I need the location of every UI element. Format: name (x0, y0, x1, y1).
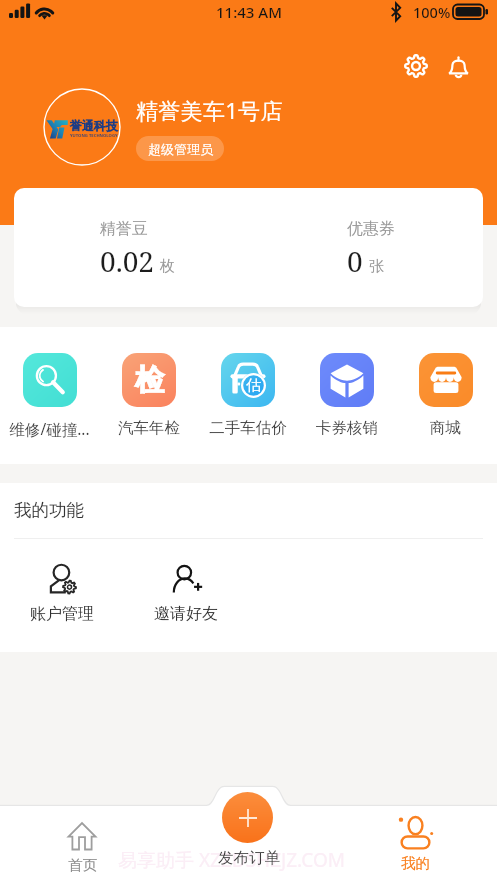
staticText: 首页 (68, 856, 97, 874)
staticText: 商城 (430, 418, 461, 438)
button[interactable]: 估 (198, 353, 297, 438)
button[interactable]: 发布订单 (222, 792, 273, 843)
staticText: 卡券核销 (316, 418, 378, 438)
staticText: 优惠券 (347, 219, 395, 239)
button[interactable]: Notifications (440, 48, 476, 84)
staticText: 易享助手 XZZDSHZJZ.COM (118, 847, 345, 873)
staticText: 估 (246, 376, 261, 395)
button[interactable]: 超级管理员 (136, 136, 224, 161)
staticText: 检 (135, 362, 164, 399)
staticText: 张 (369, 257, 384, 276)
button[interactable]: 卡券核销 (297, 353, 396, 438)
staticText: 11:43 AM (216, 2, 282, 22)
staticText: 枚 (160, 257, 175, 276)
staticText: 维修/碰撞... (9, 418, 90, 439)
staticText: YUTONG TECHNOLOGY (70, 133, 118, 139)
staticText: 精誉美车1号店 (136, 95, 283, 125)
staticText: 0 (347, 242, 363, 280)
button[interactable]: 首页 (47, 821, 117, 874)
staticText: 我的 (401, 854, 430, 872)
button[interactable]: 检 (99, 353, 198, 438)
staticText: 我的功能 (14, 499, 84, 521)
staticText: 超级管理员 (148, 141, 213, 157)
button[interactable]: 邀请好友 (124, 565, 248, 624)
staticText: 发布订单 (218, 848, 280, 868)
staticText: 精誉豆 (100, 219, 148, 239)
button[interactable]: 维修/碰撞... (0, 353, 99, 439)
button[interactable]: Settings (398, 48, 434, 84)
button[interactable]: 账户管理 (0, 565, 124, 624)
staticText: 100% (413, 2, 451, 22)
staticText: 0.02 (100, 242, 154, 280)
staticText: 誉通科技 (70, 118, 118, 133)
staticText: 账户管理 (30, 604, 94, 624)
button[interactable]: 商城 (396, 353, 495, 438)
button[interactable]: 我的 (380, 816, 450, 872)
staticText: 邀请好友 (154, 604, 218, 624)
staticText: 汽车年检 (118, 418, 180, 438)
staticText: 二手车估价 (209, 418, 287, 438)
